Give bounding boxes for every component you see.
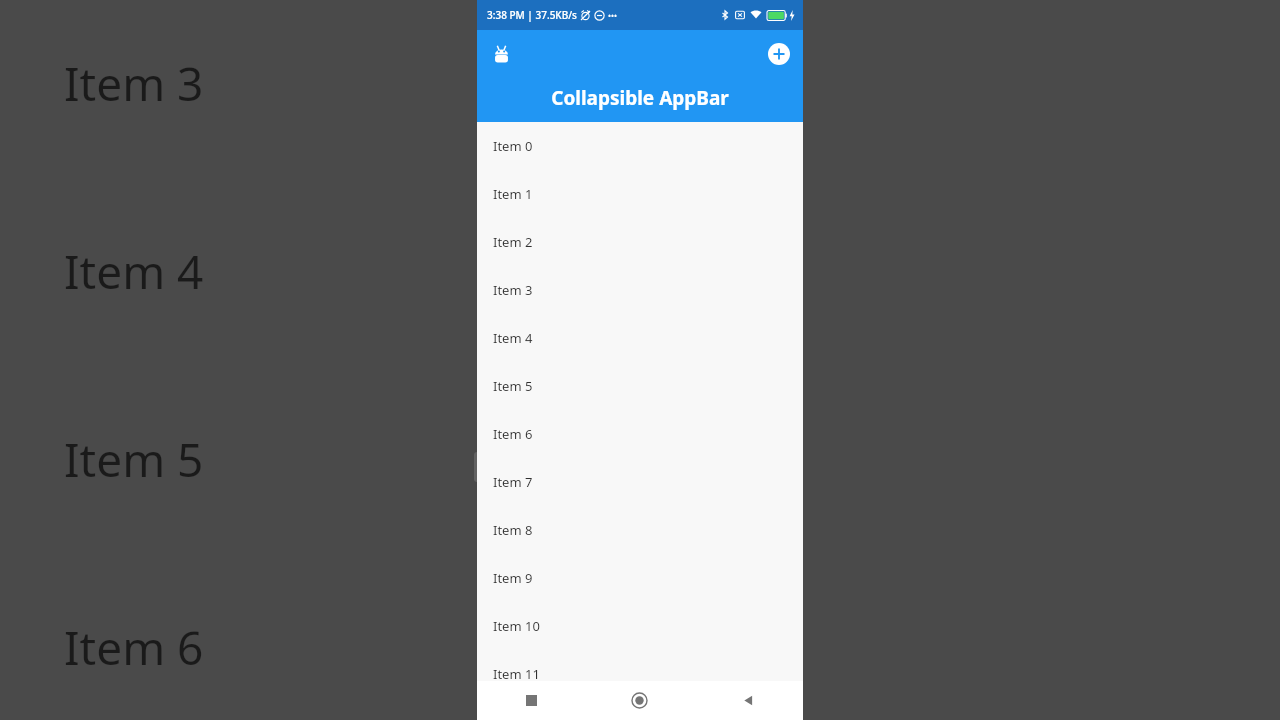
button[interactable]: Item 4 (477, 314, 803, 362)
button[interactable]: Add (761, 36, 797, 72)
staticText: Item 4 (493, 329, 533, 347)
button[interactable]: Recents (477, 681, 585, 720)
staticText: ••• (608, 10, 618, 21)
staticText: Item 1 (493, 185, 533, 203)
staticText: Item 0 (493, 137, 533, 155)
staticText: Item 7 (493, 473, 533, 491)
button[interactable]: Home (585, 681, 694, 720)
staticText: Item 8 (493, 521, 533, 539)
button[interactable]: Item 10 (477, 602, 803, 650)
staticText: Item 6 (64, 616, 204, 679)
button[interactable]: Item 0 (477, 122, 803, 170)
button[interactable]: Item 6 (477, 410, 803, 458)
button[interactable]: Item 5 (477, 362, 803, 410)
button[interactable]: Item 3 (477, 266, 803, 314)
button[interactable]: Item 2 (477, 218, 803, 266)
staticText: Item 3 (493, 281, 533, 299)
staticText: Item 2 (493, 233, 533, 251)
staticText: Item 6 (493, 425, 533, 443)
staticText: Item 5 (64, 428, 204, 491)
staticText: Item 9 (493, 569, 533, 587)
button[interactable]: Back (694, 681, 803, 720)
button[interactable]: Item 9 (477, 554, 803, 602)
staticText: Item 3 (64, 52, 204, 115)
button[interactable]: Android (483, 36, 519, 72)
staticText: Item 11 (493, 665, 540, 683)
staticText: Collapsible AppBar (477, 85, 803, 111)
staticText: Item 5 (493, 377, 533, 395)
staticText: Item 4 (64, 240, 204, 303)
button[interactable]: Item 7 (477, 458, 803, 506)
staticText: 3:38 PM | 37.5KB/s (487, 8, 577, 22)
button[interactable]: Item 8 (477, 506, 803, 554)
staticText: Item 10 (493, 617, 540, 635)
button[interactable]: Item 1 (477, 170, 803, 218)
button[interactable]: Item 11 (477, 650, 803, 698)
